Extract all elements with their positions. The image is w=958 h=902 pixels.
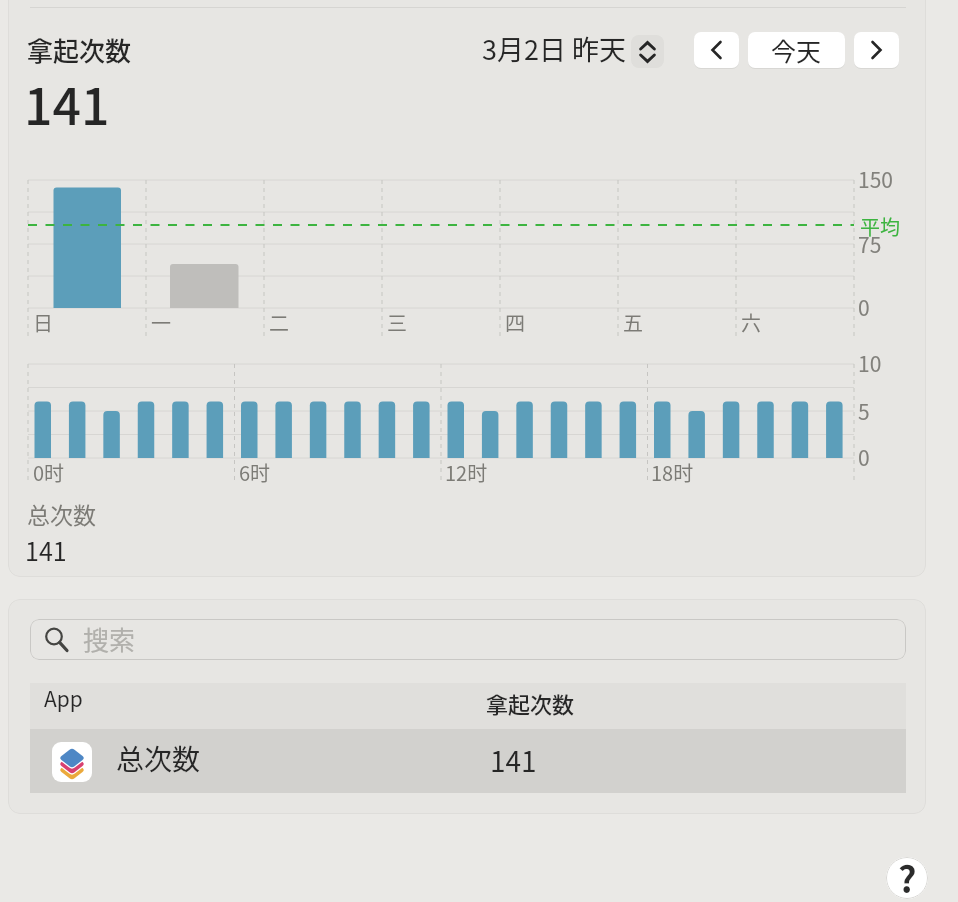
staticText: 12时: [445, 458, 488, 487]
staticText: 一: [151, 308, 171, 337]
button[interactable]: ?: [886, 857, 928, 899]
staticText: 150: [858, 164, 893, 194]
staticText: 141: [24, 67, 110, 139]
staticText: 四: [505, 308, 525, 337]
staticText: 0: [858, 442, 870, 472]
button[interactable]: [631, 35, 664, 68]
button[interactable]: 今天: [748, 32, 845, 68]
staticText: 二: [269, 308, 289, 337]
staticText: 搜索: [83, 620, 136, 658]
staticText: 18时: [651, 458, 694, 487]
staticText: 平均: [860, 212, 900, 241]
staticText: 141: [25, 532, 67, 568]
staticText: 10: [858, 348, 882, 378]
staticText: 三: [387, 308, 407, 337]
staticText: 6时: [239, 458, 271, 487]
button[interactable]: [30, 619, 906, 660]
staticText: 拿起次数: [27, 31, 132, 69]
staticText: 3月2日 昨天: [482, 29, 627, 68]
staticText: 总次数: [27, 497, 96, 530]
staticText: App: [44, 683, 83, 713]
button[interactable]: [854, 32, 899, 68]
button[interactable]: [694, 32, 739, 68]
staticText: 五: [623, 308, 643, 337]
staticText: 日: [33, 308, 53, 337]
staticText: 拿起次数: [486, 687, 575, 719]
button[interactable]: [30, 729, 906, 793]
staticText: 0: [858, 292, 870, 322]
staticText: ?: [898, 857, 917, 893]
staticText: 5: [858, 396, 870, 426]
staticText: 75: [858, 229, 882, 259]
staticText: 141: [490, 740, 537, 781]
staticText: 总次数: [116, 738, 201, 779]
staticText: 今天: [771, 32, 822, 68]
staticText: 六: [741, 308, 761, 337]
staticText: 0时: [33, 458, 65, 487]
